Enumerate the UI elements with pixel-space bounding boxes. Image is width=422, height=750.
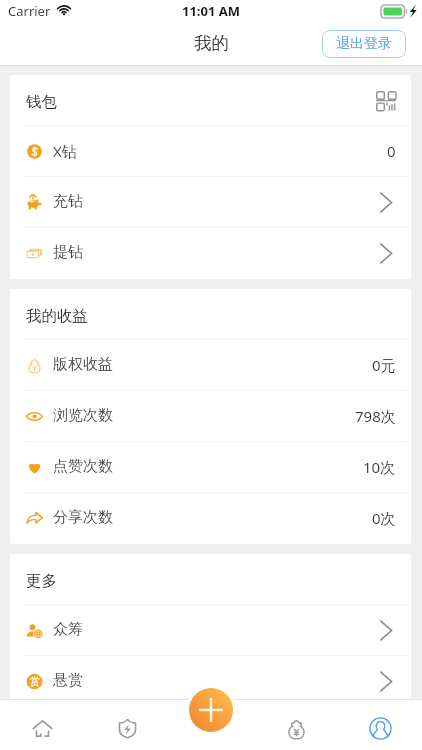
staticText: 11:01 AM <box>182 2 241 20</box>
staticText: 浏览次数 <box>53 406 113 425</box>
staticText: 更多 <box>26 571 57 591</box>
staticText: 分享次数 <box>53 508 113 527</box>
staticText: 0 <box>387 141 396 161</box>
staticText: 版权收益 <box>53 355 113 374</box>
button[interactable]: Security <box>85 699 170 750</box>
staticText: 798次 <box>355 406 396 426</box>
staticText: 我的 <box>194 32 229 54</box>
button[interactable]: 版权收益 <box>10 340 411 391</box>
staticText: 我的收益 <box>26 306 88 326</box>
button[interactable]: 浏览次数 <box>10 391 411 442</box>
staticText: 悬赏 <box>53 671 83 690</box>
staticText: Carrier <box>8 2 51 20</box>
staticText: 钱包 <box>26 92 57 112</box>
staticText: 点赞次数 <box>53 457 113 476</box>
button[interactable]: 提钻 <box>10 228 411 279</box>
staticText: 0次 <box>372 508 396 528</box>
button[interactable]: Wallet <box>254 699 338 750</box>
button[interactable]: Home <box>0 699 85 750</box>
staticText: 0元 <box>372 355 396 375</box>
button[interactable]: 赏 <box>10 656 411 707</box>
button[interactable]: 分享次数 <box>10 493 411 544</box>
button[interactable]: X钻 <box>10 126 411 177</box>
button[interactable]: 点赞次数 <box>10 442 411 493</box>
staticText: 赏 <box>30 675 40 688</box>
button[interactable]: 充钻 <box>10 177 411 228</box>
button[interactable]: 退出登录 <box>322 30 406 58</box>
staticText: 众筹 <box>53 620 83 639</box>
button[interactable]: Profile <box>338 699 422 750</box>
staticText: 充钻 <box>53 192 83 211</box>
button[interactable]: 众筹 <box>10 605 411 656</box>
staticText: 退出登录 <box>336 35 392 53</box>
button[interactable]: Scan QR code <box>373 88 399 114</box>
staticText: X钻 <box>53 141 77 161</box>
staticText: 10次 <box>363 457 396 477</box>
button[interactable]: Add <box>186 685 236 735</box>
staticText: 提钻 <box>53 243 83 262</box>
